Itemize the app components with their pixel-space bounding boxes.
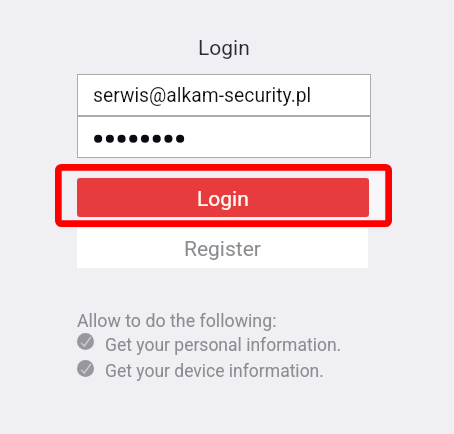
button[interactable]: serwis@alkam-security.pl bbox=[77, 74, 371, 116]
button[interactable]: Register bbox=[77, 228, 368, 268]
staticText: Get your device information. bbox=[105, 361, 324, 382]
staticText: Login bbox=[197, 187, 249, 212]
button[interactable] bbox=[77, 116, 371, 158]
staticText: Register bbox=[184, 237, 261, 262]
other: Permission granted bbox=[77, 333, 94, 350]
staticText: Get your personal information. bbox=[105, 335, 342, 356]
other: Permission granted bbox=[77, 360, 94, 377]
staticText: Allow to do the following: bbox=[77, 310, 277, 331]
button[interactable]: Login bbox=[77, 178, 369, 217]
staticText: serwis@alkam-security.pl bbox=[93, 84, 312, 107]
staticText: Login bbox=[198, 36, 250, 61]
